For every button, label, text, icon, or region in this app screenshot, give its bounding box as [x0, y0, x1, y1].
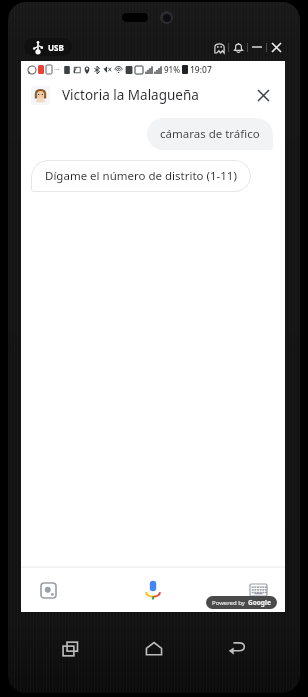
button[interactable]: Home: [134, 629, 174, 669]
button[interactable]: Close: [268, 39, 284, 55]
button[interactable]: Minimize: [249, 39, 265, 55]
button[interactable]: Voice input: [136, 573, 170, 607]
staticText: ···: [54, 65, 60, 75]
button[interactable]: Avatar: [31, 86, 50, 105]
button[interactable]: Incognito: [211, 39, 227, 55]
button[interactable]: Powered by: [206, 596, 277, 609]
button[interactable]: Google Lens: [35, 577, 61, 603]
button[interactable]: cámaras de tráfico: [147, 118, 273, 150]
button[interactable]: Dígame el número de distrito (1-11): [31, 160, 251, 192]
staticText: Google: [248, 598, 271, 607]
button[interactable]: Notifications: [230, 39, 246, 55]
staticText: 19:07: [190, 64, 212, 76]
staticText: Powered by: [212, 599, 245, 607]
button[interactable]: USB: [24, 38, 72, 56]
button[interactable]: Close: [251, 83, 275, 107]
button[interactable]: Keyboard: [245, 577, 271, 603]
staticText: cámaras de tráfico: [160, 126, 260, 142]
button[interactable]: Recent apps: [51, 629, 91, 669]
staticText: Victoria la Malagueña: [62, 86, 199, 104]
staticText: 91%: [164, 64, 180, 75]
staticText: Dígame el número de distrito (1-11): [45, 168, 237, 184]
staticText: USB: [48, 42, 64, 53]
button[interactable]: Back: [217, 629, 257, 669]
